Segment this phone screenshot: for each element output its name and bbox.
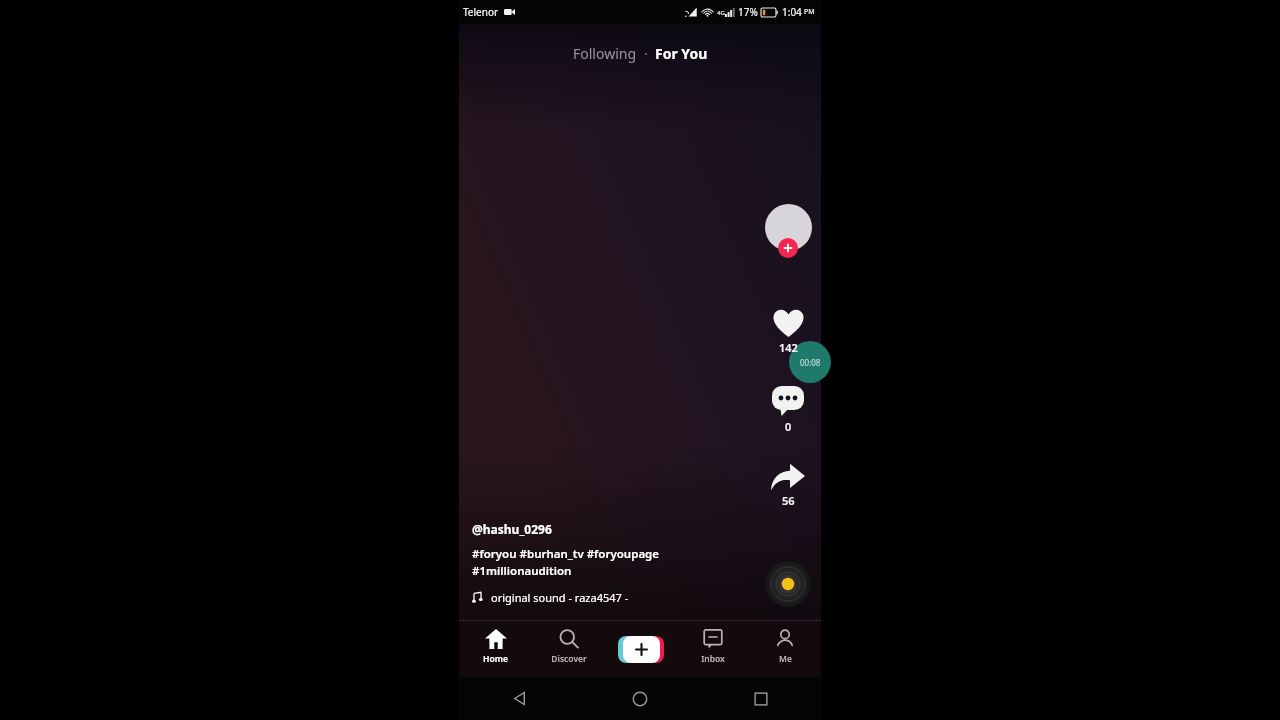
button[interactable]: Profile, follow bbox=[761, 204, 815, 258]
button[interactable]: @hashu_0296 bbox=[472, 520, 552, 538]
button[interactable]: Home bbox=[579, 677, 700, 720]
staticText: Discover bbox=[551, 653, 587, 665]
staticText: 142 bbox=[779, 340, 798, 355]
staticText: Me bbox=[779, 653, 792, 665]
button[interactable]: Create bbox=[605, 621, 677, 677]
staticText: 00:08 bbox=[800, 357, 821, 368]
staticText: Telenor bbox=[463, 5, 499, 19]
staticText: 17% bbox=[738, 5, 758, 19]
staticText: @hashu_0296 bbox=[472, 521, 552, 537]
button[interactable]: Following bbox=[565, 40, 645, 67]
button[interactable]: Recent apps bbox=[700, 677, 821, 720]
button[interactable]: Like bbox=[766, 306, 811, 357]
staticText: 4G bbox=[717, 9, 725, 17]
button[interactable]: Sound bbox=[765, 561, 811, 607]
staticText: Following bbox=[573, 44, 637, 63]
staticText: 1:04 bbox=[782, 5, 802, 19]
staticText: Home bbox=[483, 653, 508, 665]
button[interactable]: Inbox bbox=[677, 621, 749, 677]
staticText: #foryou #burhan_tv #foryoupage #1million… bbox=[472, 546, 660, 579]
button[interactable]: Me bbox=[749, 621, 821, 677]
staticText: PM bbox=[804, 7, 815, 17]
button[interactable]: Discover bbox=[532, 621, 605, 677]
button[interactable]: Home bbox=[459, 621, 532, 677]
button[interactable]: Share bbox=[765, 461, 811, 510]
staticText: Inbox bbox=[701, 653, 725, 665]
staticText: original sound - raza4547 - bbox=[491, 590, 629, 605]
staticText: For You bbox=[655, 44, 708, 63]
staticText: 56 bbox=[782, 493, 795, 508]
button[interactable]: Comments bbox=[766, 384, 810, 436]
button[interactable]: original sound - raza4547 - bbox=[472, 589, 629, 606]
staticText: 0 bbox=[785, 419, 792, 434]
button[interactable]: For You bbox=[647, 40, 716, 67]
button[interactable]: Back bbox=[459, 677, 579, 720]
